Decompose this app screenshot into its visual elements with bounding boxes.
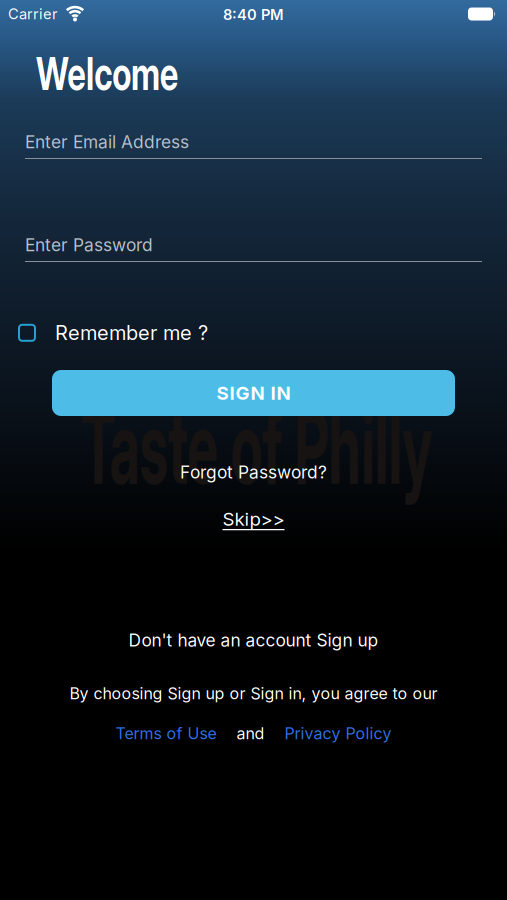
staticText: Don't have an account Sign up	[128, 630, 378, 650]
button[interactable]: Skip>>	[214, 500, 292, 538]
staticText: By choosing Sign up or Sign in, you agre…	[69, 684, 437, 703]
button[interactable]: Terms of Use	[115, 724, 216, 743]
staticText: Enter Password	[25, 235, 153, 255]
staticText: Remember me ?	[55, 321, 208, 345]
staticText: Skip>>	[222, 508, 284, 530]
button[interactable]: Enter Password	[25, 231, 482, 259]
staticText: Welcome	[36, 50, 210, 97]
button[interactable]: Enter Email Address	[25, 128, 482, 156]
button[interactable]: Don't have an account Sign up	[122, 624, 384, 656]
staticText: Carrier	[8, 5, 58, 23]
staticText: Privacy Policy	[284, 724, 391, 743]
staticText: and	[236, 724, 264, 743]
staticText: Terms of Use	[115, 724, 216, 743]
button[interactable]: Forgot Password?	[172, 454, 335, 490]
staticText: Taste of Philly	[127, 423, 385, 470]
button[interactable]: Privacy Policy	[284, 724, 391, 743]
button[interactable]: SIGN IN	[52, 370, 455, 416]
staticText: SIGN IN	[216, 382, 290, 404]
button[interactable]: Remember me ?	[19, 321, 208, 345]
staticText: Enter Email Address	[25, 132, 189, 152]
staticText: Forgot Password?	[180, 462, 327, 482]
staticText: 8:40 PM	[223, 6, 284, 23]
